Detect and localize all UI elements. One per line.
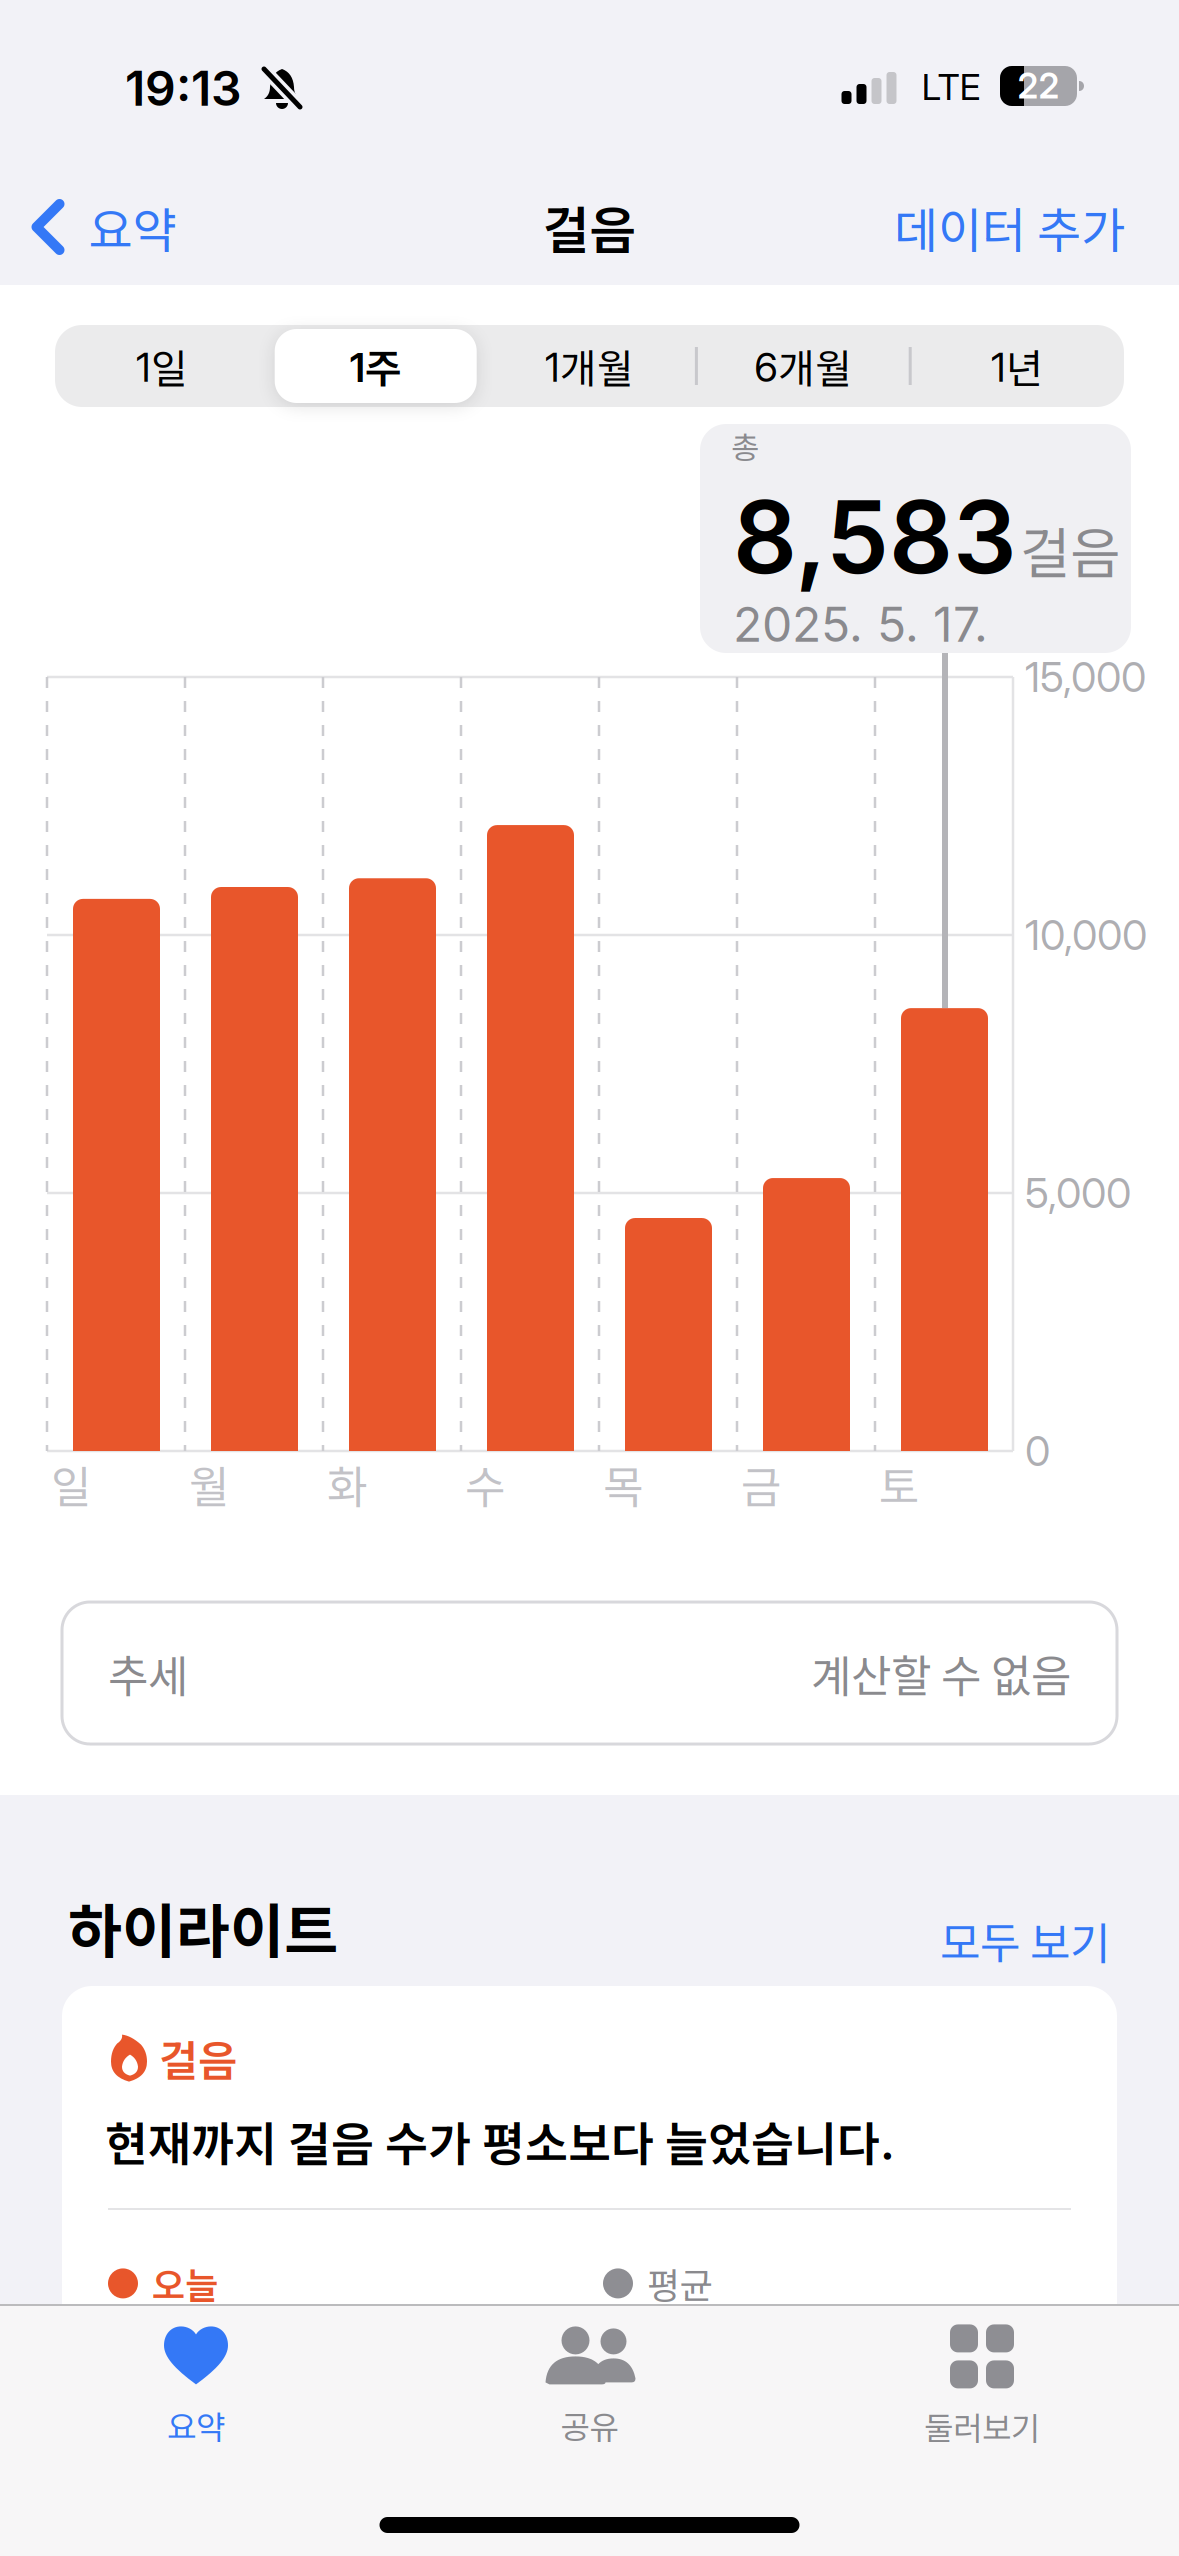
staticText: 요약 [167,2402,225,2448]
button[interactable]: 요약 [31,197,176,257]
staticText: 월 [189,1453,229,1515]
staticText: 둘러보기 [924,2403,1040,2449]
button[interactable]: 1주 [274,327,478,405]
staticText: 화 [327,1453,367,1515]
button[interactable]: 1년 [915,327,1119,405]
button[interactable]: 요약 [76,2322,316,2452]
staticText: 15,000 [1025,653,1146,701]
button[interactable]: 둘러보기 [842,2322,1122,2452]
button[interactable]: 추세 [62,1602,1117,1744]
staticText: 총 [731,424,759,467]
staticText: 데이터 추가 [894,193,1125,261]
staticText: 0 [1025,1427,1050,1475]
button[interactable]: 모두 보기 [810,1909,1110,1971]
staticText: 평균 [647,2258,713,2309]
staticText: 걸음 [1020,511,1120,588]
staticText: 토 [879,1453,919,1515]
button[interactable]: 데이터 추가 [725,193,1125,261]
staticText: 1년 [991,338,1043,394]
button[interactable]: 공유 [469,2322,709,2452]
staticText: 공유 [560,2402,618,2448]
staticText: 요약 [88,193,176,261]
staticText: 19:13 [125,60,242,117]
staticText: 22 [1017,66,1059,106]
staticText: 걸음 [542,191,636,263]
staticText: 목 [603,1453,643,1515]
staticText: 추세 [108,1642,188,1704]
button[interactable]: 1일 [60,327,264,405]
staticText: 하이라이트 [68,1886,338,1969]
staticText: 걸음 [159,2028,237,2088]
staticText: 10,000 [1025,911,1147,959]
staticText: 1일 [136,338,188,394]
staticText: 현재까지 걸음 수가 평소보다 늘었습니다. [105,2108,895,2174]
staticText: 계산할 수 없음 [811,1642,1071,1704]
staticText: 오늘 [152,2258,218,2309]
staticText: 6개월 [754,338,852,394]
staticText: 8,583 [733,478,1017,596]
button[interactable]: 6개월 [701,327,905,405]
staticText: 2025. 5. 17. [733,596,988,653]
staticText: 일 [51,1453,91,1515]
staticText: 수 [465,1453,505,1515]
staticText: 1개월 [545,338,634,394]
staticText: 금 [741,1453,781,1515]
staticText: 1주 [350,338,402,394]
staticText: 5,000 [1025,1169,1131,1217]
staticText: 모두 보기 [940,1909,1110,1971]
button[interactable]: 걸음 [62,1986,1117,2386]
staticText: LTE [921,66,980,108]
button[interactable]: 1개월 [487,327,691,405]
